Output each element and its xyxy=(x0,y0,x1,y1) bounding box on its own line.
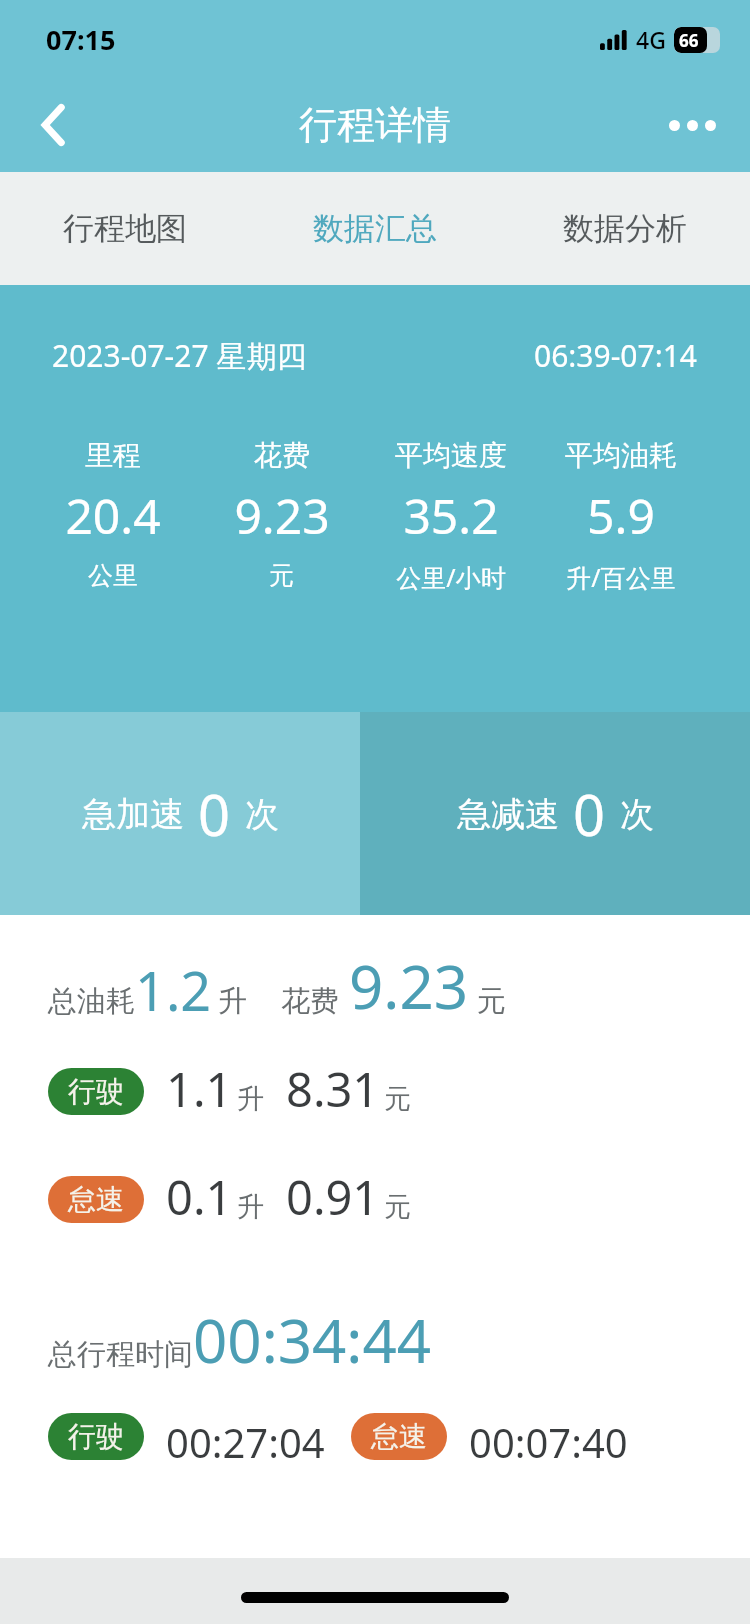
staticText: 0.91 xyxy=(286,1165,380,1229)
staticText: 元 xyxy=(384,1082,411,1116)
staticText: 07:15 xyxy=(46,21,116,58)
staticText: 急加速 xyxy=(82,793,184,836)
staticText: 数据分析 xyxy=(563,209,687,248)
staticText: 次 xyxy=(620,793,654,836)
staticText: 总油耗 xyxy=(48,983,135,1020)
staticText: 花费 xyxy=(281,983,339,1020)
staticText: 9.23 xyxy=(349,945,469,1027)
staticText: 0 xyxy=(198,776,231,852)
staticText: 平均油耗 xyxy=(565,438,677,473)
staticText: 20.4 xyxy=(65,483,161,548)
staticText: 升 xyxy=(237,1190,264,1224)
staticText: 公里/小时 xyxy=(396,560,506,594)
button[interactable]: Back xyxy=(24,95,84,155)
button[interactable]: 数据分析 xyxy=(500,172,750,285)
staticText: 行程详情 xyxy=(299,101,451,149)
staticText: 平均速度 xyxy=(395,438,507,473)
staticText: 公里 xyxy=(88,560,138,591)
staticText: 4G xyxy=(636,24,666,55)
staticText: 0.1 xyxy=(166,1165,233,1229)
button[interactable]: 急减速 xyxy=(360,712,750,915)
staticText: 1.2 xyxy=(135,953,212,1027)
staticText: 00:07:40 xyxy=(469,1415,628,1469)
staticText: 次 xyxy=(245,793,279,836)
staticText: 升 xyxy=(237,1082,264,1116)
button[interactable]: 数据汇总 xyxy=(250,172,500,285)
staticText: 00:34:44 xyxy=(193,1299,432,1381)
staticText: 9.23 xyxy=(234,483,330,548)
staticText: 行驶 xyxy=(68,1074,124,1109)
staticText: 总行程时间 xyxy=(48,1336,193,1373)
staticText: 1.1 xyxy=(166,1057,233,1121)
staticText: 00:27:04 xyxy=(166,1415,325,1469)
staticText: 元 xyxy=(269,560,294,591)
staticText: 8.31 xyxy=(286,1057,380,1121)
button[interactable]: More options xyxy=(660,100,724,150)
staticText: 35.2 xyxy=(403,483,499,548)
button[interactable]: 急加速 xyxy=(0,712,360,915)
staticText: 行驶 xyxy=(68,1419,124,1454)
staticText: 怠速 xyxy=(371,1419,427,1454)
staticText: 升/百公里 xyxy=(566,560,676,594)
staticText: 66 xyxy=(679,29,699,52)
staticText: 急减速 xyxy=(457,793,559,836)
staticText: 行程地图 xyxy=(63,209,187,248)
staticText: 5.9 xyxy=(587,483,655,548)
staticText: 里程 xyxy=(85,438,141,473)
staticText: 怠速 xyxy=(68,1182,124,1217)
button[interactable]: 行程地图 xyxy=(0,172,250,285)
staticText: 元 xyxy=(384,1190,411,1224)
staticText: 2023-07-27 星期四 xyxy=(52,335,307,376)
staticText: 花费 xyxy=(254,438,310,473)
staticText: 0 xyxy=(573,776,606,852)
staticText: 06:39-07:14 xyxy=(534,335,698,376)
staticText: 升 xyxy=(218,983,247,1020)
staticText: 数据汇总 xyxy=(313,209,437,248)
staticText: 元 xyxy=(477,983,506,1020)
